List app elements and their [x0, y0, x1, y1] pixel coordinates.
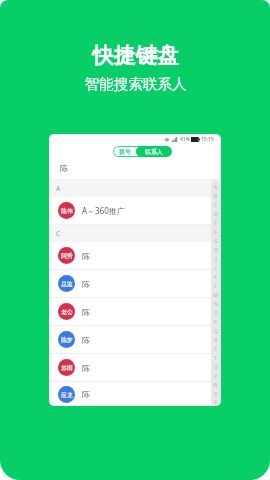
button[interactable]: Alphabet index — [211, 180, 220, 406]
button[interactable]: 苏雨 — [49, 354, 221, 381]
button[interactable]: 拨号 — [113, 146, 136, 157]
staticText: Y — [214, 399, 217, 405]
staticText: C — [56, 229, 61, 238]
staticText: 联系人 — [145, 148, 163, 156]
staticText: R — [214, 337, 217, 343]
staticText: 陈 — [82, 389, 90, 399]
staticText: A～360推广 — [82, 205, 125, 216]
staticText: U — [214, 364, 218, 370]
staticText: 快捷键盘 — [92, 42, 179, 69]
staticText: M — [213, 292, 218, 298]
button[interactable]: 联系人 — [136, 146, 172, 157]
staticText: 陈 — [82, 279, 90, 289]
staticText: 陈梦 — [61, 336, 73, 343]
staticText: 阿秀 — [61, 252, 73, 259]
staticText: W — [213, 382, 218, 388]
staticText: L — [214, 283, 217, 289]
staticText: J — [215, 265, 217, 271]
staticText: 苏雨 — [61, 364, 73, 371]
staticText: 拨号 — [119, 148, 131, 156]
staticText: 智能搜索联系人 — [84, 75, 187, 93]
staticText: F — [214, 229, 217, 235]
staticText: K — [214, 274, 217, 280]
staticText: 41% — [180, 136, 190, 143]
staticText: 总监 — [61, 280, 73, 287]
staticText: 陈 — [82, 307, 90, 317]
staticText: S — [214, 346, 217, 352]
staticText: V — [214, 373, 217, 379]
staticText: 陈 — [82, 251, 90, 261]
button[interactable]: 总监 — [49, 270, 221, 297]
staticText: D — [214, 211, 218, 217]
button[interactable]: 阿秀 — [49, 242, 221, 269]
staticText: Q — [214, 328, 218, 334]
staticText: A — [56, 184, 61, 193]
staticText: 15:15 — [201, 136, 214, 143]
staticText: E — [214, 220, 217, 226]
staticText: C — [214, 202, 217, 208]
staticText: N — [214, 301, 218, 307]
staticText: H — [214, 247, 218, 253]
staticText: 应龙 — [61, 391, 73, 398]
staticText: T — [214, 355, 217, 361]
staticText: 陈 — [82, 335, 90, 345]
staticText: X — [214, 391, 217, 397]
button[interactable]: 应龙 — [49, 382, 221, 406]
staticText: 陈 — [82, 363, 90, 373]
staticText: A — [214, 184, 217, 190]
staticText: O — [214, 310, 218, 316]
staticText: P — [214, 319, 217, 325]
button[interactable]: 陈伟 — [49, 197, 221, 224]
staticText: I — [215, 256, 217, 262]
button[interactable]: 陈梦 — [49, 326, 221, 353]
staticText: G — [214, 238, 218, 244]
staticText: 陈伟 — [61, 207, 73, 214]
staticText: 老公 — [61, 308, 73, 315]
button[interactable]: 老公 — [49, 298, 221, 325]
button[interactable]: 陈 — [49, 157, 221, 179]
staticText: 陈 — [60, 163, 68, 173]
staticText: B — [214, 193, 217, 199]
